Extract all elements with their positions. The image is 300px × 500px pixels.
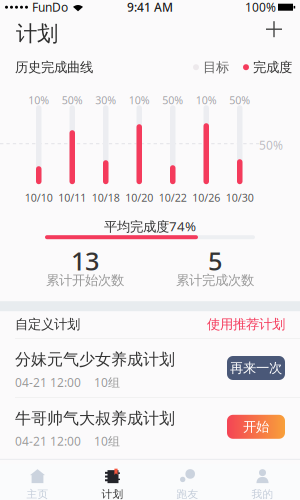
staticText: 10/11 (58, 191, 86, 205)
staticText: 10% (196, 93, 217, 107)
staticText: 50% (162, 93, 183, 107)
staticText: 累计完成次数 (176, 272, 254, 288)
staticText: 历史完成曲线 (15, 59, 93, 75)
staticText: 5 (208, 244, 222, 277)
button[interactable]: 跑友 (150, 469, 225, 500)
button[interactable]: 添加计划 (262, 17, 286, 41)
staticText: 平均完成度74% (104, 217, 196, 235)
staticText: 10/26 (192, 191, 220, 205)
button[interactable]: 计划 (75, 469, 150, 500)
staticText: 自定义计划 (15, 316, 80, 332)
staticText: 30% (95, 93, 116, 107)
button[interactable]: 开始 (227, 415, 285, 439)
staticText: 计划 (101, 488, 123, 500)
staticText: 分妹元气少女养成计划 (15, 350, 175, 369)
staticText: 目标 (203, 59, 229, 75)
staticText: 10% (28, 93, 49, 107)
staticText: 10/20 (125, 191, 153, 205)
staticText: 跑友 (176, 488, 198, 500)
staticText: 再来一次 (230, 360, 282, 376)
staticText: 50% (229, 93, 250, 107)
staticText: 10/18 (92, 191, 120, 205)
staticText: 100% (245, 0, 276, 15)
staticText: 10组 (94, 374, 120, 390)
staticText: 计划 (16, 21, 58, 47)
button[interactable]: 再来一次 (227, 356, 285, 380)
button[interactable]: 我的 (225, 469, 300, 500)
button[interactable]: 主页 (0, 469, 75, 500)
staticText: 10/10 (25, 191, 53, 205)
staticText: 10/30 (226, 191, 254, 205)
staticText: 50% (259, 137, 283, 153)
staticText: 完成度 (253, 59, 292, 75)
staticText: 04-21 12:00 (15, 374, 81, 390)
staticText: 10/22 (159, 191, 187, 205)
button[interactable]: 使用推荐计划 (207, 316, 285, 332)
staticText: 13 (71, 244, 99, 277)
staticText: 50% (62, 93, 83, 107)
staticText: FunDo (32, 0, 68, 15)
staticText: 主页 (26, 488, 48, 500)
staticText: 开始 (243, 419, 269, 435)
staticText: 04-21 12:00 (15, 433, 81, 449)
staticText: 使用推荐计划 (207, 316, 285, 332)
staticText: 累计开始次数 (46, 272, 124, 288)
staticText: 9:41 AM (127, 0, 173, 15)
staticText: 牛哥帅气大叔养成计划 (15, 408, 175, 428)
staticText: 我的 (251, 488, 273, 500)
staticText: 10组 (94, 433, 120, 449)
staticText: 10% (129, 93, 150, 107)
